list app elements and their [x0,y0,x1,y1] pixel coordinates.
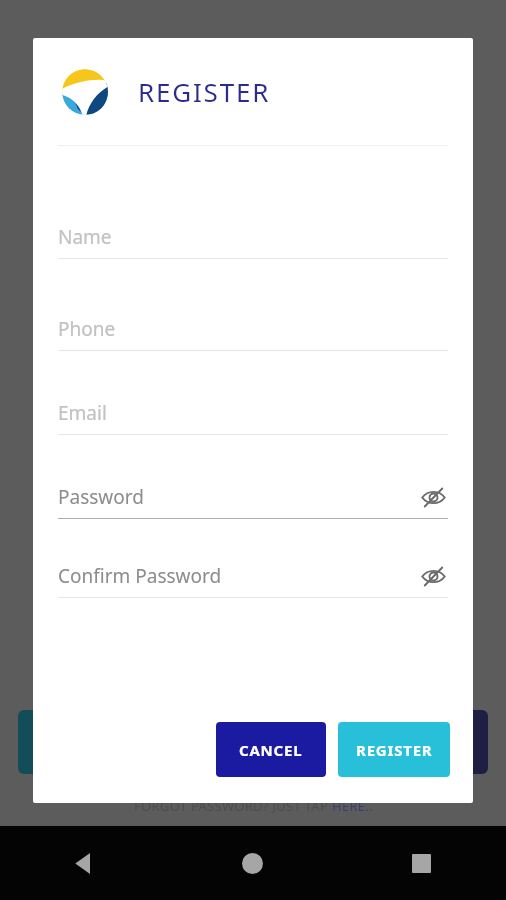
button[interactable]: Back [0,826,168,900]
staticText: Name [58,224,112,250]
button[interactable]: FORGOT PASSWORD? JUST TAP [134,797,373,815]
button[interactable]: Name [58,222,448,259]
button[interactable]: REGISTER [338,722,450,777]
staticText: REGISTER [138,74,271,109]
staticText: Password [58,484,144,510]
button[interactable]: Recent apps [337,826,506,900]
staticText: CANCEL [239,740,303,760]
staticText: HERE.. [332,797,373,815]
staticText: Phone [58,316,116,342]
button[interactable]: Show password [418,482,448,512]
staticText: FORGOT PASSWORD? JUST TAP [134,797,332,815]
staticText: REGISTER [356,740,433,760]
button[interactable]: Email [58,398,448,435]
button[interactable]: Show password [418,561,448,591]
button[interactable]: Home [168,826,337,900]
button[interactable] [426,710,488,774]
button[interactable]: Confirm Password [58,561,448,598]
button[interactable]: CANCEL [216,722,326,777]
button[interactable]: Password [58,482,448,519]
staticText: Confirm Password [58,563,222,589]
staticText: Email [58,400,107,426]
button[interactable] [18,710,80,774]
button[interactable]: Phone [58,314,448,351]
